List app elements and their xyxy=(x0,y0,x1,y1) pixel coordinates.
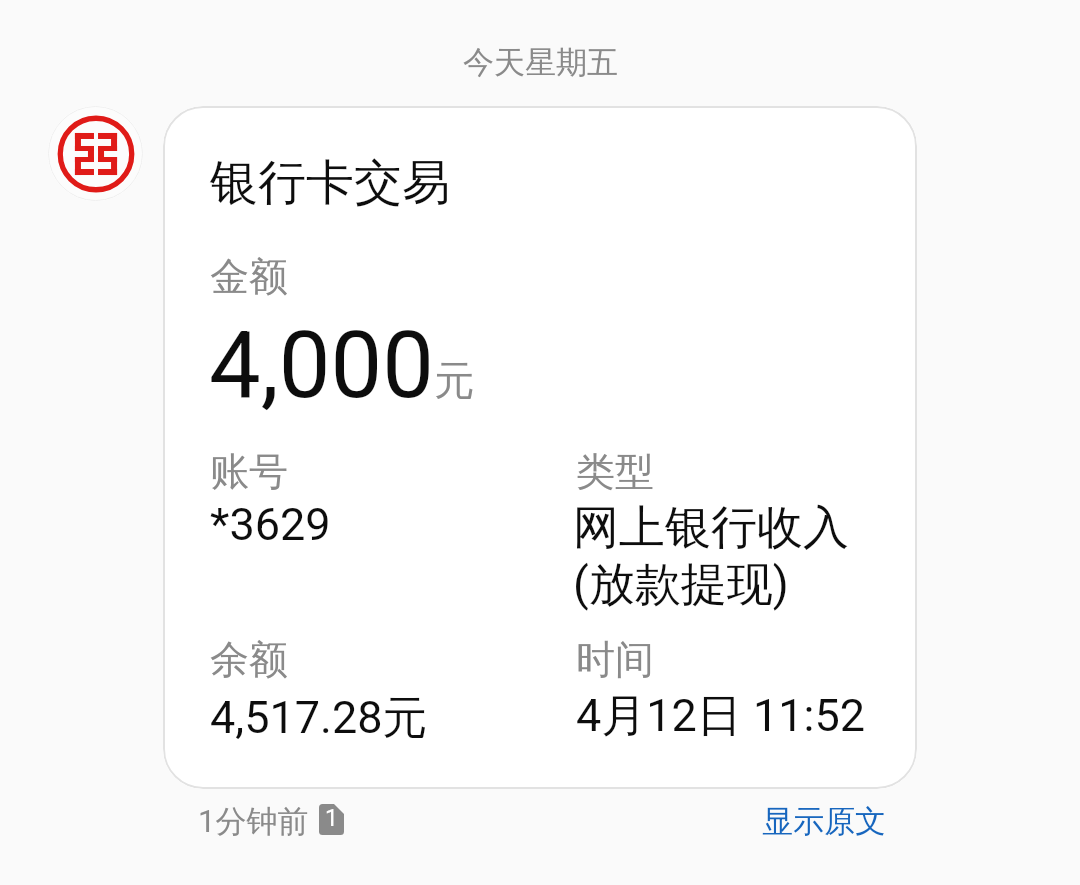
staticText: 类型 xyxy=(576,447,654,496)
staticText: 余额 xyxy=(210,635,288,684)
staticText: 网上银行收入 (放款提现) xyxy=(573,499,849,613)
staticText: 1 xyxy=(325,805,338,832)
button[interactable]: 中国工商银行 xyxy=(48,106,143,201)
staticText: *3629 xyxy=(210,498,331,551)
other: SIM 卡 1 xyxy=(319,804,344,835)
staticText: 4月12日 11:52 xyxy=(576,688,866,745)
button[interactable]: 显示原文 xyxy=(754,794,894,849)
staticText: 1分钟前 xyxy=(198,802,309,841)
staticText: 4,517.28元 xyxy=(210,690,428,747)
staticText: 今天星期五 xyxy=(463,43,618,82)
staticText: 金额 xyxy=(210,252,288,301)
staticText: 时间 xyxy=(576,635,654,684)
button[interactable]: 银行卡交易 xyxy=(163,106,917,789)
staticText: 银行卡交易 xyxy=(210,153,450,213)
staticText: 4,000 xyxy=(209,312,434,420)
staticText: 显示原文 xyxy=(762,802,886,841)
staticText: 账号 xyxy=(210,447,288,496)
staticText: 元 xyxy=(434,355,474,405)
